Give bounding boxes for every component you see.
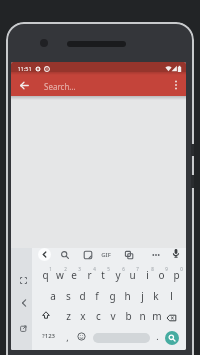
staticText: u [129, 268, 136, 282]
staticText: k [153, 289, 159, 303]
button[interactable] [166, 313, 177, 323]
staticText: Search… [44, 81, 76, 92]
staticText: l [170, 289, 173, 303]
button[interactable] [21, 299, 27, 307]
button[interactable]: o [154, 266, 168, 284]
staticText: e [71, 268, 77, 282]
staticText: 7 [136, 266, 139, 272]
button[interactable]: b [121, 307, 135, 325]
button[interactable] [60, 250, 70, 260]
button[interactable]: j [135, 287, 149, 305]
staticText: 0 [180, 266, 183, 272]
staticText: p [173, 268, 180, 282]
button[interactable]: n [135, 307, 149, 325]
button[interactable]: GIF [94, 247, 118, 263]
button[interactable]: f [90, 287, 104, 305]
button[interactable] [124, 250, 134, 260]
staticText: 6 [122, 266, 125, 272]
staticText: 3 [78, 266, 81, 272]
staticText: q [42, 268, 49, 282]
button[interactable]: r [82, 266, 96, 284]
staticText: x [80, 309, 86, 323]
staticText: n [139, 309, 146, 323]
staticText: 11:51 [17, 65, 32, 72]
button[interactable]: ?123 [38, 330, 58, 342]
button[interactable]: k [149, 287, 163, 305]
staticText: c [96, 309, 101, 323]
button[interactable]: w [53, 266, 67, 284]
button[interactable] [165, 331, 179, 345]
staticText: o [158, 268, 165, 282]
staticText: d [79, 289, 86, 303]
staticText: h [124, 289, 131, 303]
button[interactable]: m [150, 307, 164, 325]
button[interactable] [20, 277, 27, 284]
staticText: z [66, 309, 71, 323]
staticText: a [50, 289, 56, 303]
button[interactable] [77, 332, 86, 341]
staticText: 2 [64, 266, 67, 272]
button[interactable]: q [38, 266, 52, 284]
button[interactable]: t [96, 266, 110, 284]
staticText: m [152, 309, 162, 323]
button[interactable]: , [62, 330, 72, 344]
button[interactable] [83, 250, 93, 260]
button[interactable] [41, 310, 51, 320]
button[interactable]: l [164, 287, 178, 305]
button[interactable] [18, 79, 31, 92]
button[interactable]: e [67, 266, 81, 284]
button[interactable]: x [76, 307, 90, 325]
button[interactable] [151, 250, 161, 260]
button[interactable]: p [169, 266, 183, 284]
staticText: f [95, 289, 99, 303]
button[interactable]: i [140, 266, 154, 284]
button[interactable]: c [91, 307, 105, 325]
button[interactable]: y [111, 266, 125, 284]
staticText: j [141, 289, 144, 303]
button[interactable]: u [125, 266, 139, 284]
button[interactable]: . [152, 329, 162, 343]
button[interactable] [171, 78, 181, 92]
staticText: , [66, 331, 69, 343]
staticText: ?123 [42, 332, 55, 340]
staticText: v [110, 309, 116, 323]
staticText: 4 [93, 266, 96, 272]
staticText: r [87, 268, 92, 282]
staticText: y [115, 268, 121, 282]
button[interactable] [171, 248, 181, 259]
button[interactable]: z [61, 307, 75, 325]
staticText: i [146, 268, 149, 282]
staticText: GIF [101, 251, 111, 259]
button[interactable] [93, 333, 150, 343]
staticText: b [125, 309, 132, 323]
staticText: 9 [165, 266, 168, 272]
button[interactable]: v [106, 307, 120, 325]
staticText: . [156, 330, 159, 342]
button[interactable]: s [61, 287, 75, 305]
button[interactable]: g [105, 287, 119, 305]
button[interactable]: a [46, 287, 60, 305]
button[interactable] [38, 248, 51, 261]
staticText: 5 [107, 266, 110, 272]
staticText: g [109, 289, 116, 303]
staticText: 1 [49, 266, 52, 272]
staticText: w [56, 268, 64, 282]
button[interactable] [20, 325, 27, 332]
button[interactable]: Search… [44, 79, 124, 93]
staticText: 8 [151, 266, 154, 272]
staticText: s [66, 289, 71, 303]
staticText: t [101, 268, 105, 282]
button[interactable]: d [75, 287, 89, 305]
button[interactable]: h [120, 287, 134, 305]
